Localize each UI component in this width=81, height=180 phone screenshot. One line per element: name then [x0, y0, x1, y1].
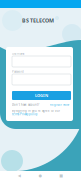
staticText: By signing in you're agree to our — [12, 109, 60, 112]
staticText: Register Now — [50, 103, 69, 106]
staticText: Username — [12, 52, 25, 55]
staticText: ● — [38, 173, 41, 178]
staticText: Don't have account? — [12, 103, 39, 106]
button[interactable]: Register Now — [50, 103, 69, 106]
staticText: terms Privacy policy — [12, 112, 37, 116]
staticText: Password — [12, 70, 24, 73]
staticText: ■ — [59, 173, 63, 178]
staticText: LOGIN — [35, 93, 48, 98]
staticText: BS TELECOM — [22, 17, 54, 24]
button[interactable]: LOGIN — [12, 91, 71, 100]
staticText: ◀ — [18, 173, 21, 178]
